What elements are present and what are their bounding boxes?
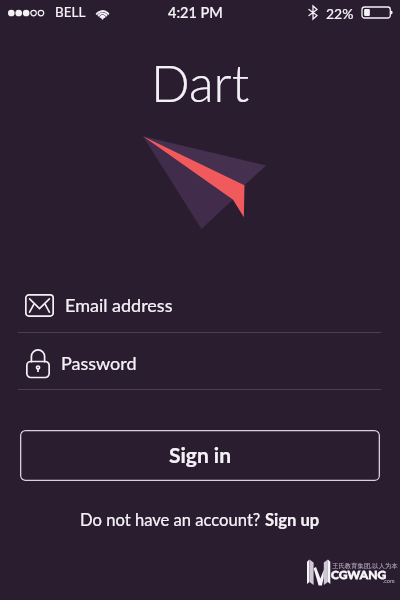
staticText: Password xyxy=(61,352,137,374)
staticText: .com xyxy=(383,578,395,585)
staticText: 4:21 PM xyxy=(168,4,223,21)
button[interactable]: Password xyxy=(0,346,400,380)
staticText: 22% xyxy=(326,5,354,22)
staticText: Email address xyxy=(65,294,173,316)
button[interactable]: Sign up xyxy=(265,510,320,530)
staticText: Do not have an account? xyxy=(80,510,265,530)
staticText: Sign up xyxy=(265,510,320,530)
staticText: CGWANG xyxy=(331,567,387,581)
staticText: Sign in xyxy=(169,442,232,467)
staticText: Dart xyxy=(0,52,400,113)
staticText: BELL xyxy=(55,4,86,20)
button[interactable]: Sign in xyxy=(20,430,380,481)
staticText: 王氏教育集团,以人为本 xyxy=(332,561,398,569)
button[interactable]: Email address xyxy=(0,288,400,322)
